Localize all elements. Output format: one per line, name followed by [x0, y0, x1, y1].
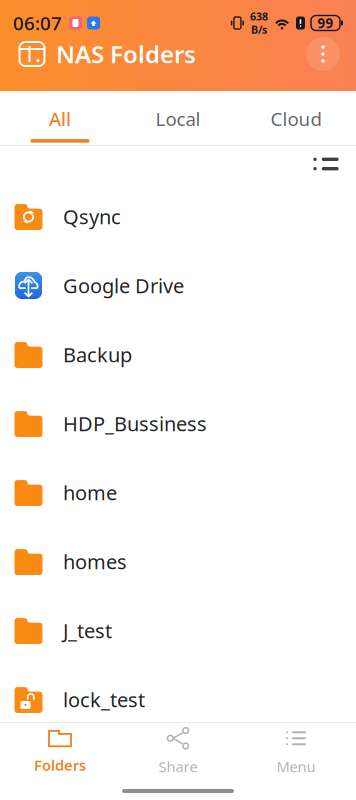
- button[interactable]: Menu: [237, 727, 355, 777]
- staticText: Folders: [34, 755, 86, 775]
- staticText: NAS Folders: [56, 38, 196, 70]
- button[interactable]: homes: [0, 527, 356, 596]
- button[interactable]: Google Drive: [0, 251, 356, 320]
- staticText: 99: [317, 14, 333, 32]
- button[interactable]: J_test: [0, 596, 356, 665]
- staticText: Local: [155, 106, 200, 131]
- button[interactable]: Backup: [0, 320, 356, 389]
- button[interactable]: Qsync: [0, 182, 356, 251]
- staticText: Multimedia: [63, 755, 168, 782]
- staticText: Qsync: [63, 203, 121, 230]
- staticText: 638: [250, 9, 268, 23]
- button[interactable]: Cloud: [237, 90, 355, 145]
- staticText: Share: [158, 757, 197, 776]
- staticText: J_test: [63, 617, 112, 644]
- staticText: Google Drive: [63, 272, 184, 299]
- staticText: Cloud: [270, 106, 321, 131]
- button[interactable]: Server: [16, 38, 48, 70]
- button[interactable]: Change view: [304, 142, 348, 186]
- button[interactable]: HDP_Bussiness: [0, 389, 356, 458]
- button[interactable]: Share: [119, 727, 237, 777]
- button[interactable]: More options: [306, 37, 340, 71]
- staticText: lock_test: [63, 686, 145, 713]
- staticText: 06:07: [13, 11, 62, 35]
- staticText: Backup: [63, 341, 132, 368]
- button[interactable]: All: [1, 90, 119, 145]
- button[interactable]: Multimedia: [0, 734, 356, 800]
- button[interactable]: Local: [119, 90, 237, 145]
- button[interactable]: lock_test: [0, 665, 356, 734]
- staticText: B/s: [251, 22, 267, 37]
- staticText: All: [49, 106, 71, 131]
- button[interactable]: Folders: [1, 727, 119, 777]
- button[interactable]: home: [0, 458, 356, 527]
- staticText: home: [63, 479, 117, 506]
- staticText: Menu: [276, 757, 315, 776]
- staticText: homes: [63, 548, 127, 575]
- staticText: HDP_Bussiness: [63, 410, 207, 437]
